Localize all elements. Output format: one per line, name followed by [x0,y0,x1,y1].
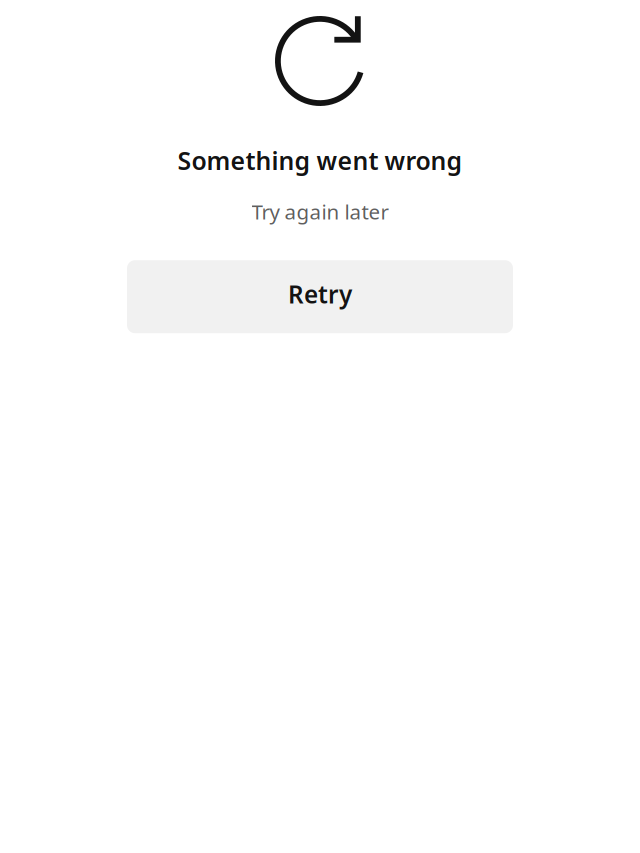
staticText: Retry [288,278,352,310]
staticText: Something went wrong [177,144,462,177]
staticText: Try again later [251,198,388,225]
button[interactable]: Retry [127,260,513,333]
